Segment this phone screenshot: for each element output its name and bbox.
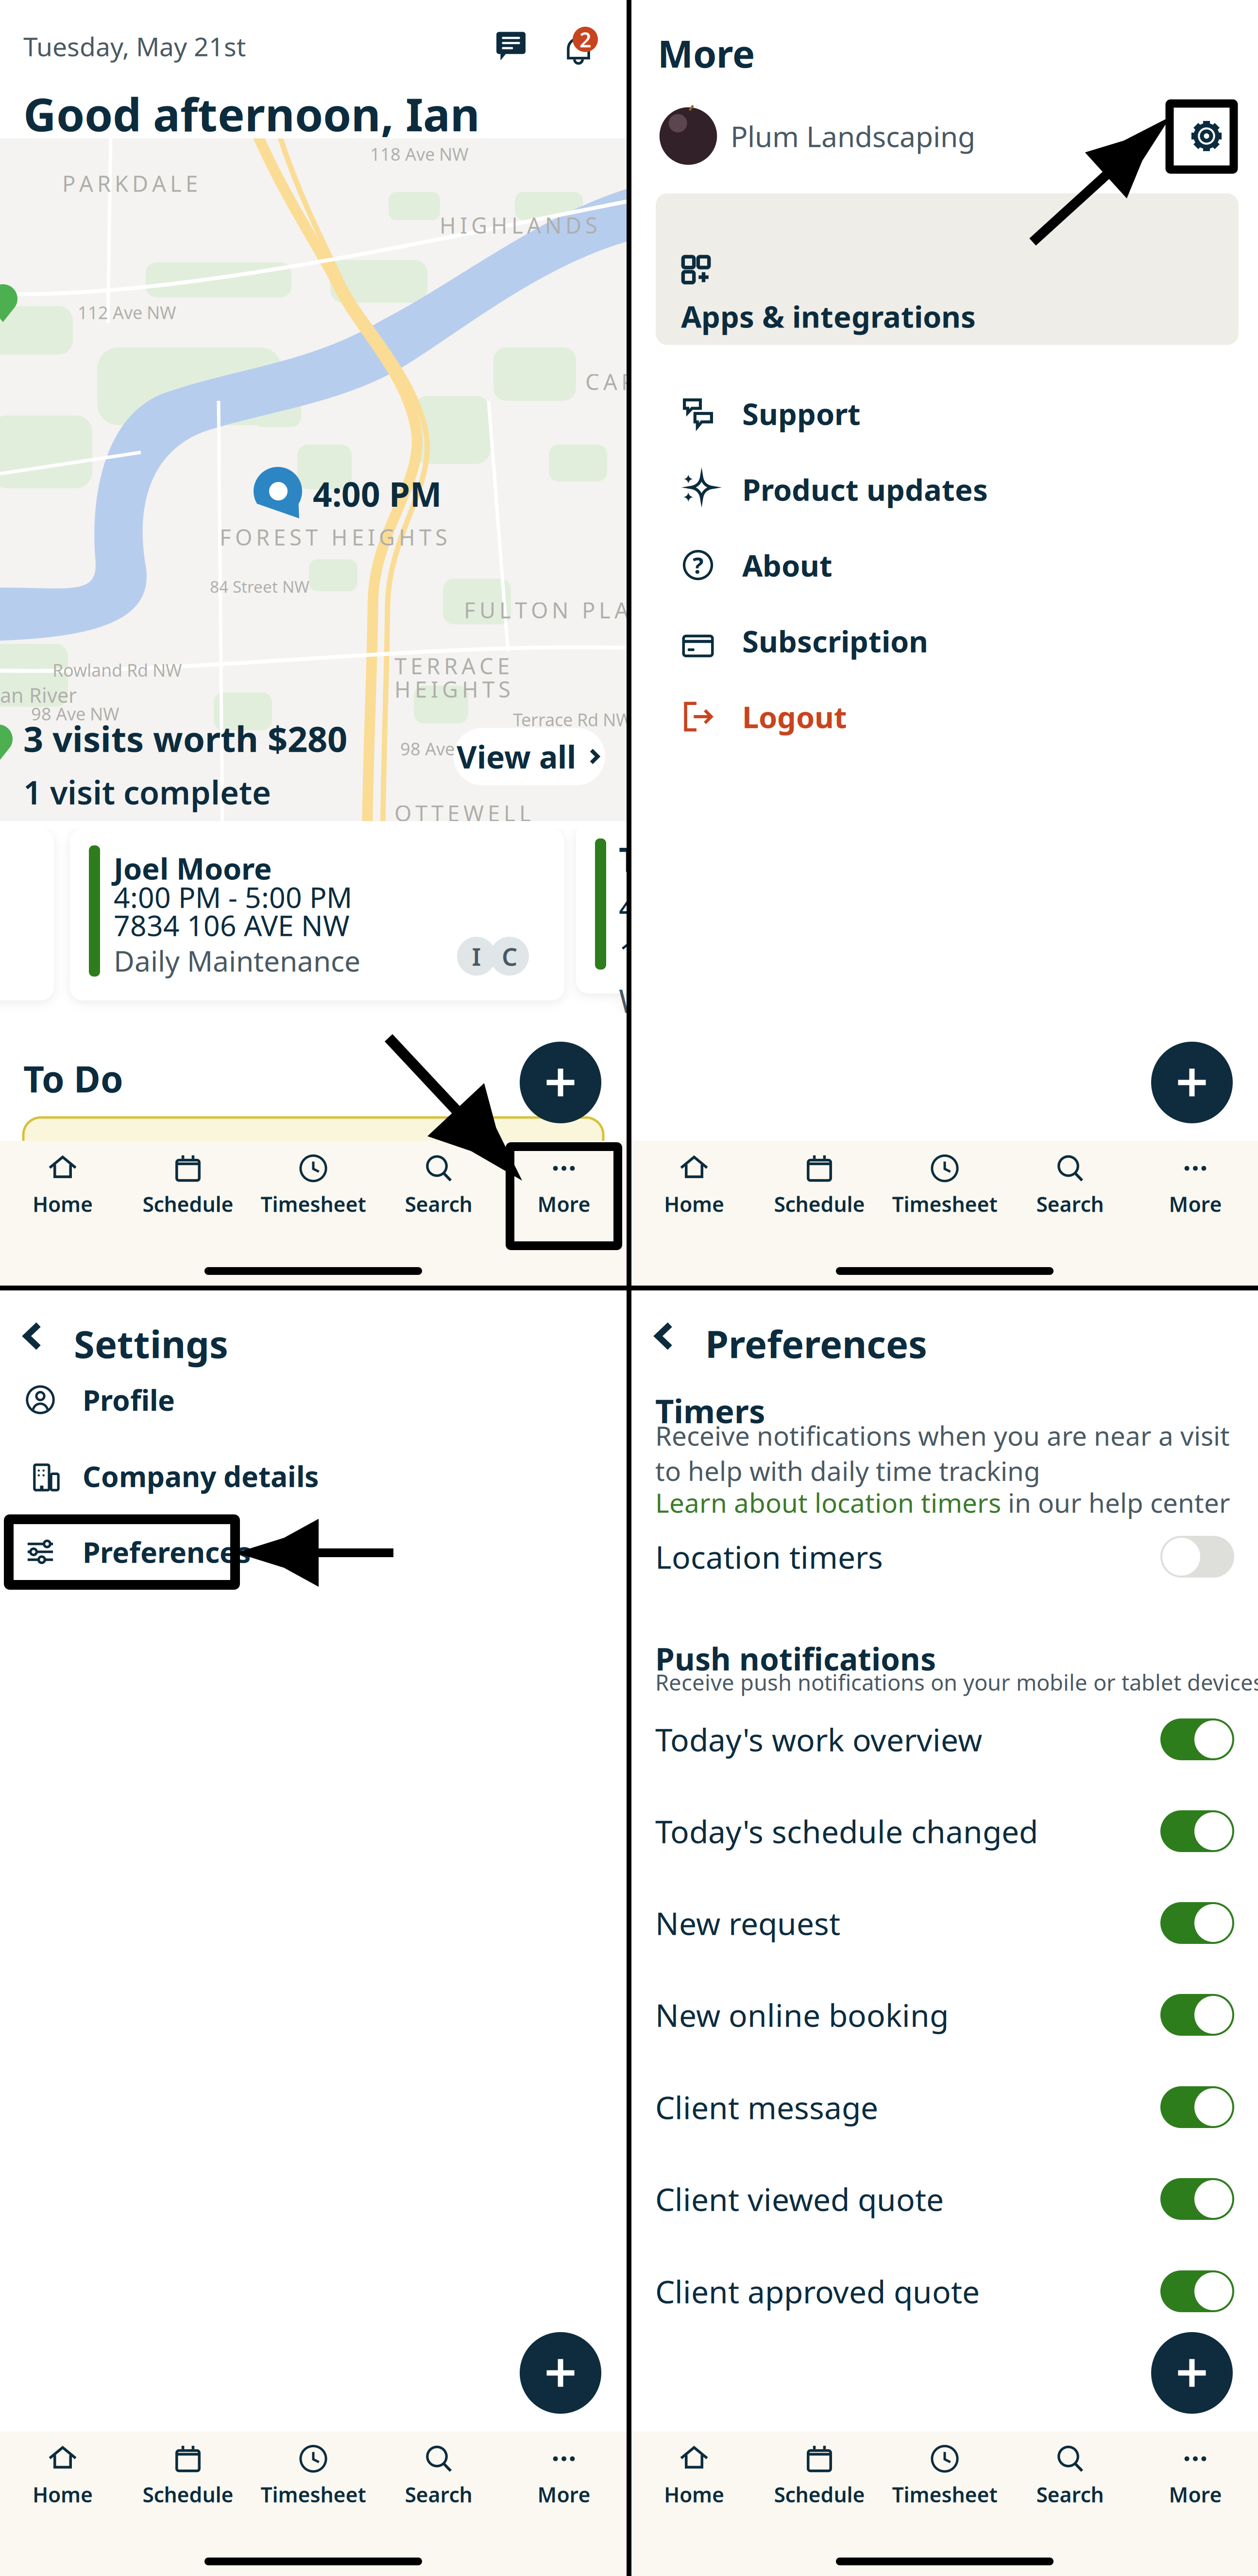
staticText: H E I G H T S (394, 674, 510, 704)
button[interactable]: Preferences (0, 1520, 627, 1583)
staticText: Logout (742, 697, 847, 736)
button[interactable]: Back (15, 1318, 51, 1355)
button[interactable]: Today's work overview (631, 1710, 1258, 1769)
button[interactable]: Schedule (757, 1141, 882, 1231)
staticText: Preferences (83, 1533, 251, 1571)
button[interactable]: Search (1007, 1141, 1133, 1231)
button[interactable]: Timesheet (251, 2431, 376, 2522)
button[interactable]: New online booking (631, 1986, 1258, 2044)
staticText: View all (457, 736, 576, 777)
staticText: Preferences (705, 1319, 927, 1369)
staticText: Push notifications (655, 1638, 936, 1679)
staticText: Daily Maintenance (114, 942, 360, 979)
staticText: 3 visits worth $280 (23, 715, 347, 762)
staticText: About (742, 545, 833, 585)
button[interactable]: Home (631, 2431, 757, 2522)
button[interactable]: Schedule (125, 1141, 251, 1231)
button[interactable]: Timesheet (882, 1141, 1007, 1231)
staticText: To Do (23, 1054, 123, 1103)
button[interactable]: Today's schedule changed (631, 1802, 1258, 1860)
staticText: O T T E W E L L (394, 798, 531, 828)
staticText: Settings (74, 1319, 228, 1369)
staticText: Today's work overview (655, 1719, 982, 1760)
button[interactable]: Support (631, 376, 1258, 451)
button[interactable]: Settings (1181, 111, 1232, 161)
button[interactable]: Timesheet (882, 2431, 1007, 2522)
staticText: Rowland Rd NW (52, 658, 182, 682)
staticText: 7834 106 AVE NW (114, 906, 350, 944)
button[interactable]: ? (631, 527, 1258, 603)
button[interactable]: Back (646, 1318, 683, 1355)
button[interactable]: Location timers (631, 1528, 1258, 1586)
staticText: Plum Landscaping (731, 117, 975, 155)
staticText: Schedule (774, 1190, 865, 1218)
staticText: Home (664, 2481, 724, 2508)
staticText: Home (664, 1190, 724, 1218)
staticText: 98 Ave N (400, 737, 472, 760)
button[interactable]: Search (376, 1141, 501, 1231)
button[interactable]: Schedule (125, 2431, 251, 2522)
button[interactable]: Timesheet (251, 1141, 376, 1231)
button[interactable]: Home (0, 1141, 125, 1231)
staticText: Search (1036, 1190, 1104, 1218)
button[interactable]: More (501, 1141, 627, 1231)
button[interactable]: View all (454, 728, 605, 785)
button[interactable]: Create (1151, 1042, 1233, 1123)
button[interactable]: Client approved quote (631, 2262, 1258, 2320)
staticText: More (1169, 2481, 1222, 2508)
staticText: an River (0, 682, 77, 708)
staticText: C A P I (585, 367, 646, 396)
staticText: Schedule (774, 2481, 865, 2508)
staticText: Receive notifications when you are near … (655, 1418, 1230, 1488)
button[interactable]: Home (0, 2431, 125, 2522)
staticText: Tuesday, May 21st (23, 29, 246, 63)
staticText: Search (405, 2481, 472, 2508)
staticText: Search (405, 1190, 472, 1218)
button[interactable]: Search (1007, 2431, 1133, 2522)
staticText: 118 Ave NW (370, 142, 468, 166)
staticText: Search (1036, 2481, 1104, 2508)
button[interactable]: Schedule (757, 2431, 882, 2522)
staticText: Client message (655, 2087, 878, 2128)
button[interactable]: Client message (631, 2078, 1258, 2136)
staticText: New request (655, 1902, 840, 1944)
staticText: Profile (83, 1381, 175, 1419)
staticText: New online booking (655, 1994, 949, 2035)
staticText: More (658, 28, 755, 78)
staticText: More (1169, 1190, 1222, 1218)
staticText: Timesheet (892, 1190, 997, 1218)
button[interactable]: More (1133, 1141, 1258, 1231)
staticText: Support (742, 394, 861, 433)
staticText: Home (33, 1190, 93, 1218)
button[interactable]: Create (1151, 2332, 1233, 2414)
staticText: Receive push notifications on your mobil… (655, 1667, 1258, 1697)
staticText: Client viewed quote (655, 2178, 944, 2220)
button[interactable]: Product updates (631, 451, 1258, 527)
staticText: Subscription (742, 621, 928, 661)
button[interactable]: Messages (496, 32, 526, 60)
button[interactable]: Notifications (560, 25, 601, 68)
button[interactable]: Profile (0, 1368, 627, 1431)
staticText: Schedule (143, 2481, 233, 2508)
button[interactable]: Logout (631, 679, 1258, 755)
staticText: Joel Moore (114, 848, 272, 888)
button[interactable]: New request (631, 1894, 1258, 1952)
button[interactable]: More (1133, 2431, 1258, 2522)
staticText: 2 (579, 26, 591, 53)
staticText: Location timers (655, 1536, 883, 1577)
staticText: F U L T O N P L A C E (464, 595, 663, 624)
staticText: Product updates (742, 469, 988, 509)
button[interactable]: Subscription (631, 603, 1258, 679)
staticText: W (619, 979, 649, 1022)
button[interactable]: Create (520, 1042, 601, 1123)
button[interactable]: Create (520, 2332, 601, 2414)
button[interactable]: Client viewed quote (631, 2170, 1258, 2228)
staticText: Today's schedule changed (655, 1811, 1038, 1852)
button[interactable]: Company details (0, 1444, 627, 1508)
staticText: Client approved quote (655, 2271, 980, 2312)
button[interactable]: Home (631, 1141, 757, 1231)
staticText: More (537, 2481, 590, 2508)
button[interactable]: More (501, 2431, 627, 2522)
button[interactable]: Apps & integrations (656, 193, 1239, 345)
button[interactable]: Search (376, 2431, 501, 2522)
